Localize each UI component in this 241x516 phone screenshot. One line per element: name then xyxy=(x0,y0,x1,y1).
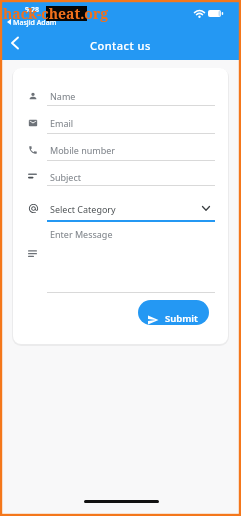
button[interactable] xyxy=(4,34,26,56)
button[interactable]: Submit xyxy=(138,300,209,325)
staticText: 9:28 xyxy=(25,5,39,15)
staticText: Email xyxy=(50,117,74,129)
staticText: Enter Message xyxy=(50,228,113,240)
staticText: Mobile number xyxy=(50,144,116,156)
staticText: Select Category xyxy=(50,203,116,215)
staticText: hack-cheat.org xyxy=(3,4,109,23)
staticText: Submit xyxy=(165,312,198,325)
staticText: Masjid Adam xyxy=(13,18,57,28)
button[interactable]: Select Category xyxy=(47,198,215,220)
staticText: Subject xyxy=(50,171,82,183)
staticText: Name xyxy=(50,90,76,102)
staticText: Contact us xyxy=(90,38,151,53)
